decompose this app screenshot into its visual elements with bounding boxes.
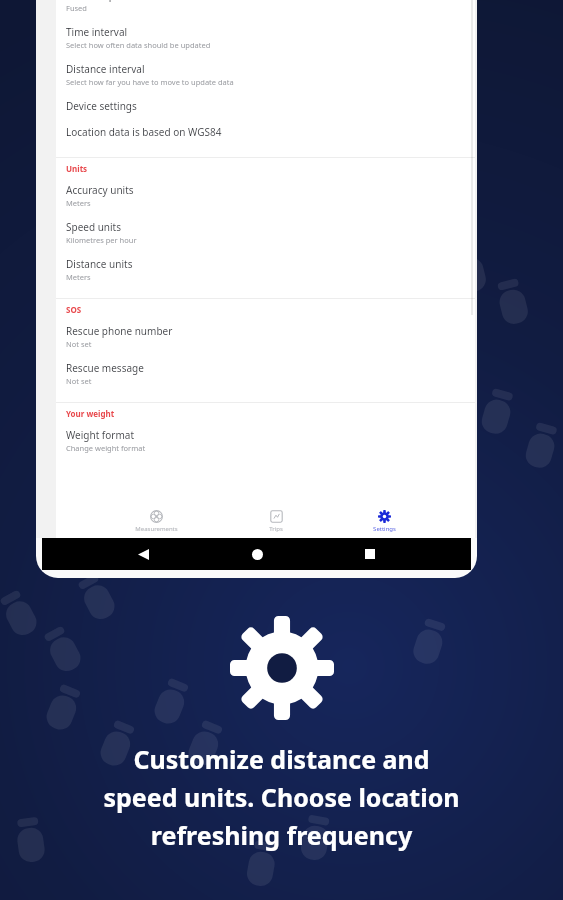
button[interactable]: Back [131,542,155,566]
button[interactable]: Location data is based on WGS84 [56,119,475,145]
staticText: Customize distance and [18,742,545,776]
staticText: Select how far you have to move to updat… [66,77,234,87]
staticText: Fused [66,3,87,13]
button[interactable]: Distance interval [56,56,475,93]
staticText: speed units. Choose location [18,780,545,814]
staticText: Change weight format [66,443,146,453]
button[interactable]: Location provider [56,0,475,19]
staticText: Device settings [66,99,137,113]
staticText: Weight format [66,428,135,442]
staticText: Distance units [66,257,133,271]
staticText: Measurements [135,525,178,533]
staticText: Accuracy units [66,183,134,197]
staticText: Distance interval [66,62,145,76]
staticText: Not set [66,376,92,386]
button[interactable]: Trips [257,507,295,536]
staticText: Select how often data should be updated [66,40,211,50]
button[interactable]: Distance units [56,251,475,288]
staticText: Rescue phone number [66,324,173,338]
staticText: Location provider [66,0,149,2]
staticText: Location data is based on WGS84 [66,125,222,139]
staticText: Meters [66,198,91,208]
staticText: Your weight [66,408,115,419]
button[interactable]: Device settings [56,93,475,119]
staticText: Kilometres per hour [66,235,137,245]
staticText: Not set [66,339,92,349]
staticText: Meters [66,272,91,282]
button[interactable]: Measurements [123,507,190,536]
button[interactable]: Home [245,542,269,566]
staticText: refreshing frequency [18,818,545,852]
button[interactable]: Speed units [56,214,475,251]
staticText: Time interval [66,25,128,39]
staticText: SOS [66,304,82,315]
staticText: Speed units [66,220,122,234]
button[interactable]: Recent apps [358,542,382,566]
staticText: Trips [269,525,283,533]
staticText: Settings [373,525,396,533]
button[interactable]: Time interval [56,19,475,56]
staticText: Rescue message [66,361,144,375]
button[interactable]: Rescue message [56,355,475,392]
button[interactable]: Rescue phone number [56,318,475,355]
button[interactable]: Accuracy units [56,177,475,214]
staticText: Units [66,163,88,174]
button[interactable]: Weight format [56,422,475,459]
button[interactable]: Settings [361,507,408,536]
